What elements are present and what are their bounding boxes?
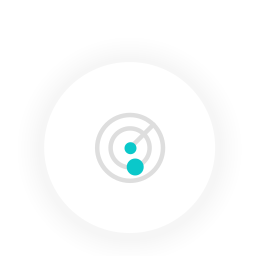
button[interactable]: Scanning for nearby devices (0, 0, 278, 256)
